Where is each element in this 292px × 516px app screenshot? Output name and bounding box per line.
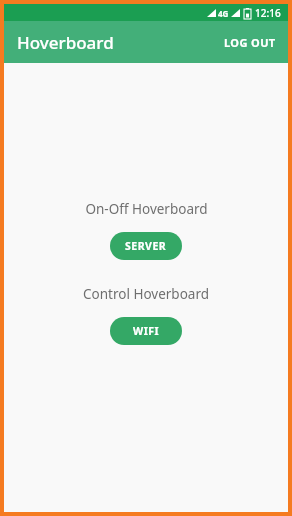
- staticText: 4G: [218, 8, 229, 19]
- staticText: Hoverboard: [17, 31, 114, 54]
- staticText: LOG OUT: [224, 35, 276, 50]
- button[interactable]: LOG OUT: [212, 25, 288, 60]
- staticText: WIFI: [133, 324, 160, 338]
- staticText: SERVER: [125, 239, 167, 253]
- button[interactable]: Wifi: [110, 317, 182, 345]
- button[interactable]: Server: [110, 232, 182, 260]
- staticText: 12:16: [255, 6, 281, 20]
- staticText: On-Off Hoverboard: [85, 200, 208, 218]
- staticText: Control Hoverboard: [83, 285, 209, 303]
